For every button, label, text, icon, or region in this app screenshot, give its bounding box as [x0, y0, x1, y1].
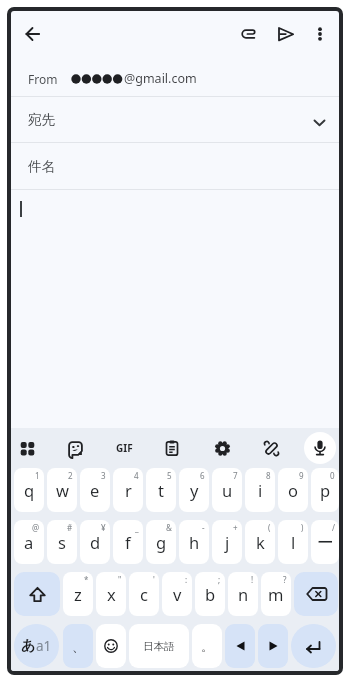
button[interactable]: 件名	[11, 143, 339, 189]
staticText: o	[288, 479, 298, 501]
staticText: "	[118, 574, 122, 585]
button[interactable]: f	[113, 520, 143, 564]
staticText: 。	[201, 639, 213, 654]
staticText: -	[202, 522, 205, 533]
staticText: 0	[330, 470, 335, 481]
staticText: e	[90, 479, 100, 501]
button[interactable]: From	[11, 61, 339, 96]
staticText: ー	[317, 532, 334, 553]
staticText: *	[84, 574, 89, 585]
staticText: t	[158, 479, 164, 501]
staticText: 日本語	[143, 640, 175, 653]
staticText: q	[24, 479, 35, 501]
staticText: :	[185, 574, 188, 585]
button[interactable]: j	[212, 520, 242, 564]
staticText: n	[238, 583, 249, 605]
staticText: &	[166, 522, 172, 533]
button[interactable]: b	[195, 572, 225, 616]
staticText: s	[58, 531, 66, 553]
staticText: 7	[233, 470, 238, 481]
button[interactable]: h	[179, 520, 209, 564]
button[interactable]: 。	[192, 624, 222, 668]
staticText: #	[67, 522, 73, 533]
staticText: 、	[72, 638, 85, 654]
button[interactable]: e	[80, 468, 110, 512]
button[interactable]: v	[162, 572, 192, 616]
button[interactable]: p	[311, 468, 339, 512]
button[interactable]	[291, 624, 336, 668]
button[interactable]	[225, 624, 255, 668]
button[interactable]	[14, 572, 60, 616]
button[interactable]: o	[278, 468, 308, 512]
staticText: u	[222, 479, 233, 501]
staticText: @	[32, 522, 40, 533]
button[interactable]	[303, 17, 337, 51]
staticText: x	[107, 583, 116, 605]
staticText: /	[332, 522, 335, 533]
staticText: (	[268, 522, 271, 533]
button[interactable]	[11, 12, 55, 56]
staticText: a1	[36, 637, 52, 655]
button[interactable]	[251, 428, 291, 468]
staticText: w	[56, 479, 69, 501]
staticText: ¥	[101, 522, 106, 533]
button[interactable]: g	[146, 520, 176, 564]
button[interactable]: あ	[14, 624, 59, 668]
staticText: j	[225, 531, 230, 553]
button[interactable]: d	[80, 520, 110, 564]
button[interactable]: m	[261, 572, 291, 616]
button[interactable]: t	[146, 468, 176, 512]
staticText: a	[24, 531, 34, 553]
button[interactable]	[304, 432, 336, 464]
button[interactable]	[294, 572, 338, 616]
button[interactable]: k	[245, 520, 275, 564]
staticText: 6	[200, 470, 205, 481]
button[interactable]	[232, 15, 266, 53]
staticText: 4	[134, 470, 139, 481]
button[interactable]	[258, 624, 288, 668]
staticText: c	[140, 583, 148, 605]
staticText: '	[153, 574, 155, 585]
button[interactable]: u	[212, 468, 242, 512]
staticText: 2	[68, 470, 73, 481]
button[interactable]	[269, 15, 303, 53]
button[interactable]	[55, 428, 95, 468]
staticText: !	[251, 574, 254, 585]
staticText: _	[135, 522, 139, 533]
staticText: 8	[266, 470, 271, 481]
button[interactable]: s	[47, 520, 77, 564]
staticText: g	[156, 531, 167, 553]
button[interactable]: a	[14, 520, 44, 564]
button[interactable]	[202, 428, 242, 468]
staticText: 1	[35, 470, 40, 481]
staticText: b	[205, 583, 216, 605]
button[interactable]: y	[179, 468, 209, 512]
button[interactable]: 日本語	[129, 624, 189, 668]
button[interactable]	[11, 428, 47, 468]
button[interactable]: c	[129, 572, 159, 616]
button[interactable]: n	[228, 572, 258, 616]
button[interactable]: l	[278, 520, 308, 564]
button[interactable]	[152, 428, 192, 468]
button[interactable]: x	[96, 572, 126, 616]
button[interactable]: w	[47, 468, 77, 512]
staticText: r	[125, 479, 132, 501]
button[interactable]: GIF	[104, 428, 144, 468]
staticText: あ	[21, 637, 36, 655]
button[interactable]: ー	[311, 520, 339, 564]
button[interactable]	[96, 624, 126, 668]
button[interactable]: r	[113, 468, 143, 512]
staticText: i	[258, 479, 263, 501]
button[interactable]: z	[63, 572, 93, 616]
staticText: k	[256, 531, 265, 553]
staticText: ?	[283, 574, 287, 585]
staticText: 9	[299, 470, 304, 481]
button[interactable]: 宛先	[11, 97, 339, 142]
staticText: p	[320, 479, 331, 501]
staticText: y	[190, 479, 199, 501]
button[interactable]: 、	[63, 624, 93, 668]
staticText: GIF	[116, 441, 133, 455]
button[interactable]: q	[14, 468, 44, 512]
button[interactable]: i	[245, 468, 275, 512]
staticText: h	[189, 531, 200, 553]
